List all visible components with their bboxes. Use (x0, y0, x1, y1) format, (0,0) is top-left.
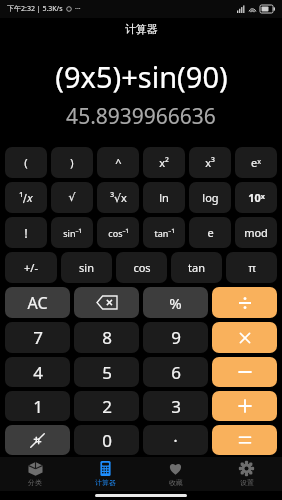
staticText: 设置 (240, 478, 254, 487)
button[interactable]: ³√x (97, 182, 139, 213)
staticText: ^ (115, 155, 122, 170)
button[interactable]: e (189, 217, 231, 248)
button[interactable]: Plus (212, 391, 277, 421)
button[interactable]: % (143, 287, 208, 318)
button[interactable]: 2 (74, 391, 139, 421)
button[interactable]: eˣ (235, 147, 277, 178)
button[interactable]: Minus (212, 357, 277, 387)
staticText: ! (24, 224, 28, 242)
button[interactable]: 分类 (0, 457, 70, 491)
button[interactable]: 计算器 (70, 457, 140, 491)
staticText: 4 (33, 361, 43, 384)
button[interactable]: tan⁻¹ (143, 217, 185, 248)
staticText: 1 (33, 395, 43, 418)
staticText: 分类 (28, 478, 42, 487)
button[interactable]: sin (61, 252, 112, 283)
staticText: ¹∕𝑥 (19, 190, 33, 205)
button[interactable]: 设置 (211, 457, 282, 491)
staticText: sin (79, 260, 94, 275)
staticText: tan⁻¹ (154, 227, 175, 239)
staticText: log (202, 190, 219, 205)
button[interactable]: x³ (189, 147, 231, 178)
button[interactable]: ¹∕𝑥 (5, 182, 47, 213)
button[interactable]: 10ˣ (235, 182, 277, 213)
staticText: 收藏 (169, 478, 183, 487)
staticText: 8 (102, 326, 112, 349)
button[interactable]: 9 (143, 322, 208, 353)
button[interactable]: 8 (74, 322, 139, 353)
button[interactable]: Collapse (5, 425, 70, 455)
staticText: ) (70, 155, 74, 170)
staticText: 计算器 (95, 478, 116, 487)
staticText: ( (24, 155, 28, 170)
button[interactable]: ! (5, 217, 47, 248)
staticText: π (248, 260, 256, 275)
staticText: · (173, 429, 178, 452)
staticText: tan (188, 260, 205, 275)
button[interactable]: log (189, 182, 231, 213)
button[interactable]: 4 (5, 357, 70, 387)
button[interactable]: mod (235, 217, 277, 248)
button[interactable]: AC (5, 287, 70, 318)
staticText: 45.8939966636 (66, 102, 216, 131)
staticText: 6 (171, 361, 181, 384)
staticText: +/- (24, 260, 38, 275)
staticText: AC (27, 292, 48, 314)
staticText: cos (133, 260, 151, 275)
button[interactable]: +/- (5, 252, 57, 283)
button[interactable]: 7 (5, 322, 70, 353)
staticText: mod (244, 225, 268, 240)
staticText: % (169, 293, 182, 313)
staticText: 7 (33, 326, 43, 349)
button[interactable]: 0 (74, 425, 139, 455)
button[interactable]: · (143, 425, 208, 455)
staticText: sin⁻¹ (63, 227, 82, 239)
button[interactable]: Backspace (74, 287, 139, 318)
button[interactable]: ) (51, 147, 93, 178)
staticText: 5 (102, 361, 112, 384)
button[interactable]: x² (143, 147, 185, 178)
staticText: e (207, 225, 214, 240)
staticText: ³√x (110, 190, 127, 205)
staticText: x² (159, 155, 169, 170)
button[interactable]: cos (116, 252, 167, 283)
button[interactable]: Multiply (212, 322, 277, 353)
staticText: 计算器 (125, 22, 158, 36)
staticText: cos⁻¹ (108, 227, 129, 239)
button[interactable]: 1 (5, 391, 70, 421)
button[interactable]: sin⁻¹ (51, 217, 93, 248)
button[interactable]: 5 (74, 357, 139, 387)
button[interactable]: √ (51, 182, 93, 213)
button[interactable]: 3 (143, 391, 208, 421)
staticText: √ (68, 191, 76, 204)
staticText: x³ (205, 155, 215, 170)
button[interactable]: 收藏 (140, 457, 211, 491)
staticText: 9 (171, 326, 181, 349)
button[interactable]: Equals (212, 425, 277, 455)
staticText: eˣ (251, 155, 261, 170)
staticText: 下午2:32 | 5.3K/s (7, 4, 63, 14)
staticText: 2 (102, 395, 112, 418)
button[interactable]: ^ (97, 147, 139, 178)
staticText: ln (159, 190, 169, 205)
staticText: 10ˣ (248, 190, 265, 205)
button[interactable]: tan (171, 252, 222, 283)
button[interactable]: Divide (212, 287, 277, 318)
button[interactable]: ln (143, 182, 185, 213)
staticText: 3 (171, 395, 181, 418)
button[interactable]: ( (5, 147, 47, 178)
staticText: 0 (102, 429, 112, 452)
staticText: ··· (75, 4, 81, 14)
button[interactable]: 6 (143, 357, 208, 387)
button[interactable]: cos⁻¹ (97, 217, 139, 248)
button[interactable]: π (226, 252, 277, 283)
staticText: (9x5)+sin(90) (55, 57, 228, 96)
